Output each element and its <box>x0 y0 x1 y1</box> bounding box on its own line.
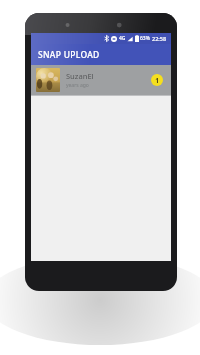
staticText: SuzanEl <box>66 71 94 81</box>
staticText: SNAP UPLOAD <box>38 49 100 61</box>
staticText: 63% <box>140 35 150 42</box>
staticText: 4G <box>119 35 126 42</box>
button[interactable]: SuzanEl <box>31 65 171 95</box>
button[interactable]: 1 new snap <box>151 74 163 86</box>
staticText: years ago <box>66 82 89 89</box>
button[interactable]: SNAP UPLOAD <box>31 44 171 65</box>
staticText: 1 <box>155 76 159 85</box>
staticText: 22:58 <box>152 35 167 42</box>
